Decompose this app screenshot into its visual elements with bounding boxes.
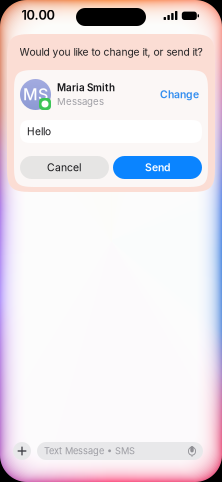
staticText: Would you like to change it, or send it?: [19, 46, 202, 58]
staticText: Messages: [57, 96, 104, 107]
staticText: 10.00: [21, 7, 54, 23]
staticText: Change: [160, 88, 199, 101]
button[interactable]: Add attachment: [13, 442, 31, 460]
button[interactable]: Change: [157, 81, 202, 107]
staticText: Maria Smith: [57, 82, 115, 94]
button[interactable]: Send: [113, 156, 202, 179]
staticText: Send: [145, 161, 170, 174]
staticText: Cancel: [47, 161, 82, 174]
staticText: Hello: [27, 125, 51, 138]
staticText: Text Message • SMS: [44, 445, 135, 456]
staticText: MS: [23, 85, 48, 104]
button[interactable]: Cancel: [20, 156, 109, 179]
